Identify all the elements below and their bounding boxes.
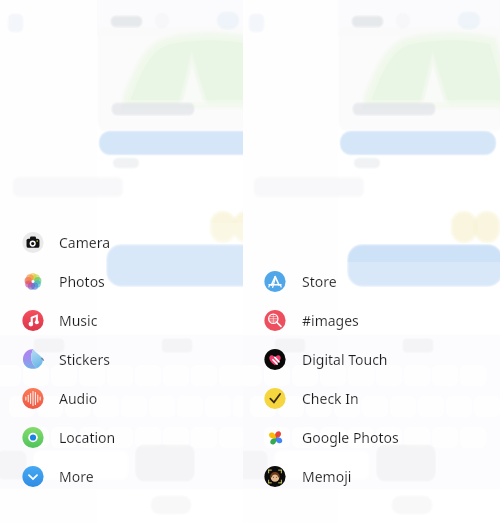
button[interactable]: Audio xyxy=(0,379,243,418)
button[interactable]: Music xyxy=(0,301,243,340)
button[interactable]: Store xyxy=(243,262,500,301)
staticText: Location xyxy=(59,428,116,447)
staticText: Stickers xyxy=(59,350,110,369)
staticText: Store xyxy=(302,272,337,291)
button[interactable]: Photos xyxy=(0,262,243,301)
staticText: Memoji xyxy=(302,467,352,486)
staticText: Audio xyxy=(59,389,98,408)
button[interactable]: Digital Touch xyxy=(243,340,500,379)
staticText: #images xyxy=(302,311,359,330)
staticText: Google Photos xyxy=(302,428,399,447)
button[interactable]: #images xyxy=(243,301,500,340)
staticText: Digital Touch xyxy=(302,350,388,369)
button[interactable]: Check In xyxy=(243,379,500,418)
button[interactable]: Stickers xyxy=(0,340,243,379)
button[interactable]: Google Photos xyxy=(243,418,500,457)
staticText: Photos xyxy=(59,272,105,291)
staticText: More xyxy=(59,467,94,486)
button[interactable]: Camera xyxy=(0,223,243,262)
button[interactable]: Location xyxy=(0,418,243,457)
button[interactable]: Memoji xyxy=(243,457,500,496)
staticText: Camera xyxy=(59,233,111,252)
button[interactable]: More xyxy=(0,457,243,496)
staticText: Music xyxy=(59,311,98,330)
staticText: Check In xyxy=(302,389,359,408)
